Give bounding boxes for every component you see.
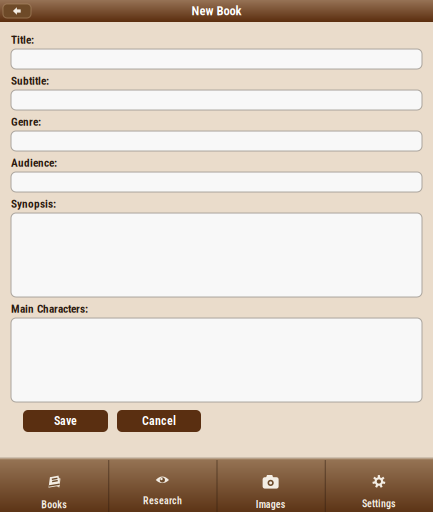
staticText: Audience:: [11, 156, 57, 170]
staticText: Research: [143, 495, 182, 507]
staticText: Cancel: [142, 414, 176, 428]
staticText: Synopsis:: [11, 197, 56, 211]
button[interactable]: Cancel: [117, 410, 201, 432]
staticText: Books: [41, 499, 67, 511]
staticText: Images: [256, 499, 286, 510]
button[interactable]: Save: [23, 410, 108, 432]
staticText: New Book: [191, 4, 241, 18]
staticText: Genre:: [11, 115, 41, 129]
button[interactable]: Back: [3, 4, 31, 18]
staticText: Settings: [362, 498, 396, 510]
staticText: Save: [54, 414, 77, 428]
staticText: Main Characters:: [11, 302, 88, 316]
staticText: Title:: [11, 33, 34, 47]
staticText: Subtitle:: [11, 74, 49, 88]
button[interactable]: Images: [216, 460, 325, 512]
button[interactable]: Books: [0, 460, 108, 512]
button[interactable]: Research: [108, 460, 216, 512]
button[interactable]: Settings: [325, 460, 433, 512]
